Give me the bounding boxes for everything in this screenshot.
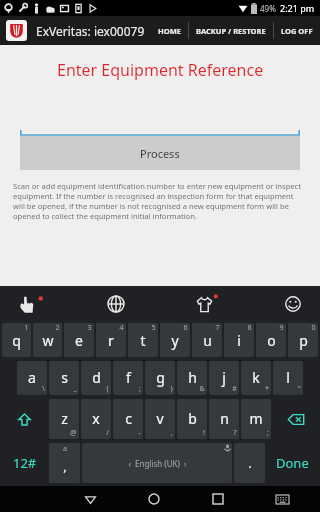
staticText: r bbox=[108, 331, 114, 350]
staticText: h bbox=[188, 368, 197, 387]
button[interactable]: a bbox=[17, 361, 47, 395]
staticText: l bbox=[286, 368, 290, 387]
button[interactable]: Recents bbox=[186, 486, 250, 512]
staticText: x bbox=[92, 409, 100, 428]
staticText: _ bbox=[73, 384, 77, 394]
button[interactable]: b bbox=[177, 399, 207, 439]
staticText: LOG OFF bbox=[281, 26, 313, 36]
button[interactable]: Themes bbox=[191, 291, 217, 317]
staticText: 8 bbox=[247, 323, 252, 333]
button[interactable]: e bbox=[64, 323, 94, 357]
button[interactable]: q bbox=[2, 323, 31, 357]
staticText: v bbox=[156, 409, 164, 428]
staticText: Enter Equipment Reference bbox=[57, 59, 264, 81]
button[interactable]: Backspace bbox=[272, 399, 319, 439]
staticText: 2:21 pm bbox=[280, 2, 315, 14]
staticText: s bbox=[61, 368, 68, 387]
button[interactable]: Clipboard bbox=[14, 291, 40, 317]
staticText: 2 bbox=[55, 323, 60, 333]
button[interactable] bbox=[20, 116, 300, 136]
staticText: z bbox=[61, 409, 68, 428]
staticText: 49% bbox=[260, 3, 276, 14]
staticText: d bbox=[92, 368, 101, 387]
staticText: BACKUP / RESTORE bbox=[196, 26, 266, 36]
staticText: 9 bbox=[279, 323, 284, 333]
button[interactable]: LOG OFF bbox=[274, 16, 320, 45]
button[interactable]: v bbox=[145, 399, 175, 439]
staticText: ? bbox=[233, 428, 237, 438]
staticText: ; bbox=[267, 428, 269, 438]
button[interactable]: c bbox=[113, 399, 143, 439]
staticText: ExVeritas: iex00079 bbox=[36, 23, 145, 39]
staticText: 12# bbox=[13, 454, 37, 472]
staticText: 3 bbox=[87, 323, 92, 333]
staticText: 5 bbox=[151, 323, 156, 333]
button[interactable]: o bbox=[256, 323, 286, 357]
staticText: y bbox=[171, 331, 179, 350]
staticText: 4 bbox=[119, 323, 124, 333]
staticText: ) bbox=[170, 384, 173, 394]
staticText: ; bbox=[139, 384, 141, 394]
staticText: e bbox=[75, 331, 83, 350]
staticText: 7 bbox=[215, 323, 220, 333]
staticText: q bbox=[12, 331, 21, 350]
button[interactable]: r bbox=[96, 323, 126, 357]
button[interactable]: Home bbox=[122, 486, 186, 512]
button[interactable]: Back bbox=[58, 486, 122, 512]
staticText: & bbox=[199, 384, 205, 394]
button[interactable]: n bbox=[209, 399, 239, 439]
button[interactable]: 12# bbox=[1, 443, 48, 483]
button[interactable]: g bbox=[145, 361, 175, 395]
button[interactable]: z bbox=[49, 399, 79, 439]
staticText: o bbox=[267, 331, 276, 350]
button[interactable]: x bbox=[81, 399, 111, 439]
button[interactable]: Change language bbox=[103, 291, 129, 317]
staticText: * bbox=[265, 384, 269, 394]
staticText: a bbox=[28, 368, 36, 387]
button[interactable]: k bbox=[241, 361, 271, 395]
staticText: b bbox=[188, 409, 197, 428]
button[interactable]: d bbox=[81, 361, 111, 395]
button[interactable]: Emoji bbox=[280, 291, 306, 317]
button[interactable]: Space bbox=[82, 443, 232, 483]
staticText: k bbox=[252, 368, 260, 387]
button[interactable]: Shift bbox=[1, 399, 48, 439]
staticText: n bbox=[220, 409, 229, 428]
staticText: Process bbox=[140, 146, 180, 161]
button[interactable]: i bbox=[224, 323, 254, 357]
staticText: f bbox=[126, 368, 131, 387]
button[interactable]: m bbox=[241, 399, 271, 439]
staticText: ‹ English (UK) › bbox=[128, 458, 187, 469]
staticText: p bbox=[299, 331, 308, 350]
button[interactable]: s bbox=[49, 361, 79, 395]
button[interactable]: j bbox=[209, 361, 239, 395]
staticText: j bbox=[222, 368, 226, 387]
button[interactable]: w bbox=[33, 323, 62, 357]
staticText: ( bbox=[106, 384, 109, 394]
staticText: w bbox=[42, 331, 54, 350]
button[interactable]: h bbox=[177, 361, 207, 395]
staticText: t bbox=[140, 331, 146, 350]
staticText: 6 bbox=[183, 323, 188, 333]
staticText: i bbox=[237, 331, 241, 350]
button[interactable]: u bbox=[192, 323, 222, 357]
button[interactable]: t bbox=[128, 323, 158, 357]
button[interactable]: Done bbox=[266, 443, 319, 483]
staticText: # bbox=[232, 384, 237, 394]
button[interactable]: f bbox=[113, 361, 143, 395]
button[interactable]: Process bbox=[20, 136, 300, 170]
button[interactable]: HOME bbox=[151, 16, 188, 45]
staticText: \ bbox=[42, 384, 45, 394]
staticText: / bbox=[106, 428, 109, 438]
staticText: Scan or add equipment identification num… bbox=[13, 181, 307, 221]
button[interactable]: y bbox=[160, 323, 190, 357]
button[interactable]: l bbox=[273, 361, 303, 395]
staticText: g bbox=[156, 368, 165, 387]
button[interactable]: p bbox=[288, 323, 318, 357]
button[interactable]: . bbox=[234, 443, 265, 483]
button[interactable]: , bbox=[49, 443, 80, 483]
staticText: Done bbox=[276, 454, 309, 472]
button[interactable]: Switch keyboard bbox=[250, 486, 314, 512]
staticText: HOME bbox=[158, 26, 181, 36]
button[interactable]: BACKUP / RESTORE bbox=[189, 16, 273, 45]
